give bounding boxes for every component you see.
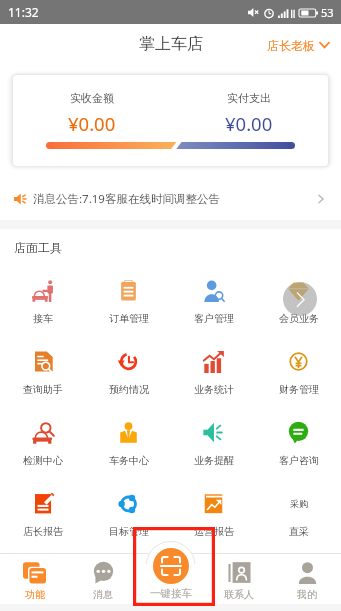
button[interactable]: 客户咨询 — [256, 408, 341, 479]
staticText: 车务中心 — [109, 454, 149, 467]
button[interactable]: 订单管理 — [86, 266, 171, 337]
staticText: 业务提醒 — [194, 454, 234, 467]
staticText: 我的 — [297, 588, 317, 601]
button[interactable]: 一键接车 — [150, 553, 192, 604]
button[interactable]: 联系人 — [205, 553, 273, 604]
staticText: 客户咨询 — [279, 454, 319, 467]
button[interactable]: 店长报告 — [0, 479, 86, 550]
staticText: 店长老板 — [267, 38, 315, 53]
button[interactable]: 检测中心 — [0, 408, 86, 479]
button[interactable]: 车务中心 — [86, 408, 171, 479]
staticText: 客户管理 — [194, 312, 234, 325]
button[interactable]: 实收金额 — [13, 75, 328, 166]
staticText: 检测中心 — [23, 454, 63, 467]
staticText: 查询助手 — [23, 383, 63, 396]
staticText: 消息公告:7.19客服在线时间调整公告 — [33, 191, 220, 207]
button[interactable]: 目标管理 — [86, 479, 171, 550]
staticText: 店面工具 — [14, 240, 62, 255]
staticText: 采购 — [290, 498, 308, 509]
button[interactable]: 客户管理 — [171, 266, 256, 337]
staticText: 实收金额 — [70, 91, 114, 105]
button[interactable]: 店长老板 — [267, 24, 329, 66]
staticText: 实付支出 — [227, 91, 271, 105]
staticText: 预约情况 — [109, 383, 149, 396]
staticText: 直采 — [289, 525, 309, 538]
staticText: 53 — [321, 5, 334, 20]
staticText: 运营报告 — [194, 525, 234, 538]
staticText: 一键接车 — [150, 587, 192, 600]
button[interactable]: 公告 — [0, 178, 341, 220]
other: 公告 — [14, 193, 27, 205]
staticText: 会员业务 — [279, 312, 319, 325]
staticText: 目标管理 — [109, 525, 149, 538]
button[interactable]: 查询助手 — [0, 337, 86, 408]
staticText: 业务统计 — [194, 383, 234, 396]
staticText: 接车 — [33, 312, 53, 325]
staticText: 消息 — [93, 588, 113, 601]
button[interactable]: 运营报告 — [171, 479, 256, 550]
button[interactable]: 功能 — [0, 553, 69, 604]
button[interactable]: 业务统计 — [171, 337, 256, 408]
staticText: 掌上车店 — [139, 34, 203, 54]
button[interactable]: 业务提醒 — [171, 408, 256, 479]
button[interactable]: 消息 — [69, 553, 137, 604]
staticText: 财务管理 — [279, 383, 319, 396]
button[interactable]: 预约情况 — [86, 337, 171, 408]
button[interactable]: 会员业务 — [256, 266, 341, 337]
button[interactable]: 更多 — [283, 282, 317, 316]
staticText: 功能 — [25, 588, 45, 601]
staticText: 11:32 — [8, 4, 39, 20]
staticText: 订单管理 — [109, 312, 149, 325]
button[interactable]: 财务管理 — [256, 337, 341, 408]
staticText: 店长报告 — [23, 525, 63, 538]
staticText: 联系人 — [224, 588, 254, 601]
button[interactable]: 接车 — [0, 266, 86, 337]
staticText: ¥0.00 — [68, 111, 116, 136]
button[interactable]: 采购 — [256, 479, 341, 550]
staticText: ¥0.00 — [225, 111, 273, 136]
button[interactable]: 我的 — [273, 553, 341, 604]
